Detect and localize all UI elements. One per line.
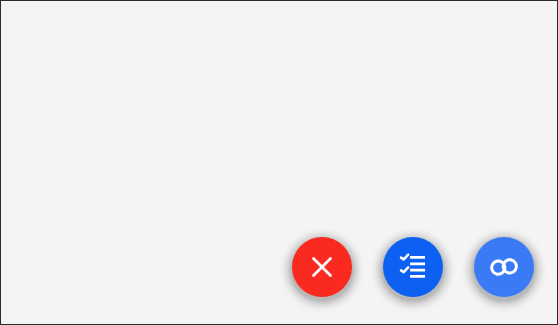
button[interactable]: Close <box>292 237 352 297</box>
button[interactable]: Checklist <box>383 237 443 297</box>
button[interactable]: Link <box>474 237 534 297</box>
